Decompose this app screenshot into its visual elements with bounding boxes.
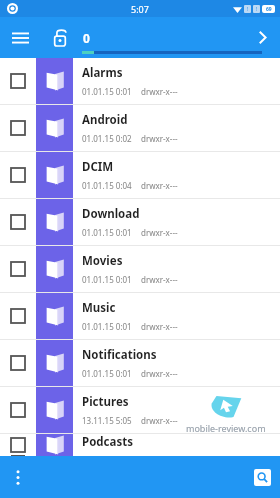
button[interactable]: Select Alarms bbox=[0, 58, 36, 104]
button[interactable]: Select Download bbox=[0, 199, 280, 245]
button[interactable]: Select Movies bbox=[0, 246, 280, 292]
button[interactable]: Select Download bbox=[0, 199, 36, 245]
staticText: drwxr-x--- bbox=[141, 86, 178, 97]
button[interactable]: Select DCIM bbox=[0, 152, 36, 198]
button[interactable]: Select DCIM bbox=[0, 152, 280, 198]
button[interactable]: Select Pictures bbox=[0, 387, 280, 433]
button[interactable]: Select Podcasts bbox=[0, 434, 280, 456]
staticText: 01.01.15 0:01 bbox=[82, 321, 132, 332]
staticText: Download bbox=[82, 206, 140, 222]
staticText: 5:07 bbox=[131, 3, 149, 15]
staticText: drwxr-x--- bbox=[141, 274, 178, 285]
staticText: 69 bbox=[266, 6, 272, 13]
staticText: 0 bbox=[83, 30, 90, 46]
button[interactable]: Select Pictures bbox=[0, 387, 36, 433]
staticText: 01.01.15 0:04 bbox=[82, 180, 132, 191]
button[interactable]: Menu bbox=[0, 17, 40, 58]
staticText: 01.01.15 0:01 bbox=[82, 368, 132, 379]
staticText: Movies bbox=[82, 253, 123, 269]
button[interactable]: Select Music bbox=[0, 293, 280, 339]
staticText: 01.01.15 0:01 bbox=[82, 86, 132, 97]
staticText: ! bbox=[256, 6, 258, 13]
button[interactable]: Select Movies bbox=[0, 246, 36, 292]
staticText: DCIM bbox=[82, 159, 114, 175]
button[interactable]: Forward bbox=[244, 17, 280, 58]
button[interactable]: More options bbox=[0, 456, 36, 498]
staticText: Alarms bbox=[82, 65, 123, 81]
button[interactable]: Select Alarms bbox=[0, 58, 280, 104]
button[interactable]: Select Podcasts bbox=[0, 434, 36, 456]
button[interactable]: Select Android bbox=[0, 105, 36, 151]
button[interactable]: Search bbox=[254, 469, 271, 486]
button[interactable]: Select Music bbox=[0, 293, 36, 339]
staticText: drwxr-x--- bbox=[141, 415, 178, 426]
button[interactable]: Lock bbox=[40, 17, 80, 58]
staticText: drwxr-x--- bbox=[141, 227, 178, 238]
staticText: 01.01.15 0:02 bbox=[82, 133, 132, 144]
staticText: drwxr-x--- bbox=[141, 133, 178, 144]
staticText: 13.11.15 5:05 bbox=[82, 415, 132, 426]
staticText: Pictures bbox=[82, 394, 129, 410]
button[interactable]: Select Notifications bbox=[0, 340, 280, 386]
staticText: drwxr-x--- bbox=[141, 368, 178, 379]
button[interactable]: Select Notifications bbox=[0, 340, 36, 386]
staticText: Music bbox=[82, 300, 116, 316]
staticText: 01.01.15 0:01 bbox=[82, 227, 132, 238]
staticText: Notifications bbox=[82, 347, 157, 363]
staticText: ! bbox=[247, 6, 249, 13]
staticText: drwxr-x--- bbox=[141, 321, 178, 332]
staticText: Podcasts bbox=[82, 434, 133, 450]
staticText: mobile-review.com bbox=[186, 422, 266, 434]
staticText: 01.01.15 0:01 bbox=[82, 274, 132, 285]
staticText: drwxr-x--- bbox=[141, 180, 178, 191]
staticText: Android bbox=[82, 112, 128, 128]
button[interactable]: Select Android bbox=[0, 105, 280, 151]
